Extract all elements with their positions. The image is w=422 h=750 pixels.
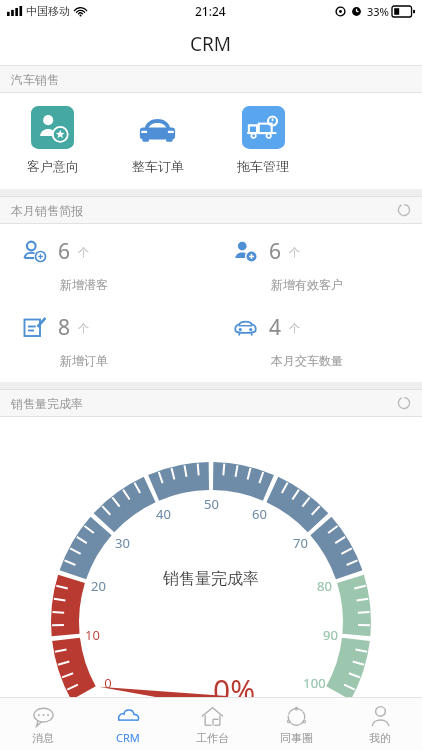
staticText: 60 bbox=[252, 505, 267, 523]
button[interactable]: 拖车管理 bbox=[210, 106, 316, 174]
button[interactable]: 6 bbox=[211, 224, 422, 300]
staticText: 新增潜客 bbox=[60, 277, 108, 292]
staticText: 个 bbox=[289, 245, 300, 259]
button[interactable]: 工作台 bbox=[170, 698, 254, 750]
staticText: 6 bbox=[58, 237, 71, 266]
button[interactable]: 8 bbox=[0, 300, 211, 376]
staticText: 10 bbox=[85, 626, 100, 644]
button[interactable]: Refresh bbox=[392, 198, 416, 222]
staticText: 消息 bbox=[32, 731, 54, 745]
staticText: 21:24 bbox=[195, 3, 226, 19]
staticText: 新增订单 bbox=[60, 353, 108, 368]
staticText: 33% bbox=[367, 4, 389, 19]
staticText: 80 bbox=[317, 577, 332, 595]
staticText: 工作台 bbox=[196, 731, 229, 745]
staticText: 8 bbox=[58, 313, 71, 342]
staticText: 50 bbox=[204, 495, 219, 513]
staticText: 个 bbox=[289, 321, 300, 335]
staticText: 汽车销售 bbox=[11, 72, 59, 87]
staticText: 6 bbox=[269, 237, 282, 266]
staticText: 0% bbox=[213, 670, 256, 711]
button[interactable]: 4 bbox=[211, 300, 422, 376]
staticText: 本月销售简报 bbox=[11, 203, 83, 218]
staticText: 70 bbox=[293, 534, 308, 552]
staticText: 我的 bbox=[369, 731, 391, 745]
staticText: 拖车管理 bbox=[237, 158, 289, 174]
staticText: 0 bbox=[104, 674, 112, 692]
staticText: 个 bbox=[78, 245, 89, 259]
staticText: 本月交车数量 bbox=[271, 353, 343, 368]
button[interactable]: 同事圈 bbox=[254, 698, 338, 750]
button[interactable]: 我的 bbox=[338, 698, 422, 750]
staticText: 100 bbox=[303, 674, 326, 692]
staticText: 整车订单 bbox=[132, 158, 184, 174]
staticText: 个 bbox=[78, 321, 89, 335]
button[interactable]: 消息 bbox=[0, 698, 85, 750]
staticText: 40 bbox=[156, 505, 171, 523]
button[interactable]: 6 bbox=[0, 224, 211, 300]
button[interactable]: CRM bbox=[85, 698, 170, 750]
staticText: 90 bbox=[323, 626, 338, 644]
button[interactable]: 整车订单 bbox=[105, 106, 210, 174]
staticText: 中国移动 bbox=[26, 4, 70, 18]
staticText: 销售量完成率 bbox=[11, 396, 83, 411]
staticText: 同事圈 bbox=[280, 731, 313, 745]
staticText: 4 bbox=[269, 313, 282, 342]
staticText: 客户意向 bbox=[27, 158, 79, 174]
staticText: CRM bbox=[116, 730, 140, 745]
staticText: 30 bbox=[115, 534, 130, 552]
staticText: 销售量完成率 bbox=[163, 569, 259, 589]
staticText: 20 bbox=[91, 577, 106, 595]
button[interactable]: 客户意向 bbox=[0, 106, 105, 174]
button[interactable]: Refresh bbox=[392, 391, 416, 415]
staticText: 新增有效客户 bbox=[271, 277, 343, 292]
staticText: CRM bbox=[190, 31, 232, 57]
